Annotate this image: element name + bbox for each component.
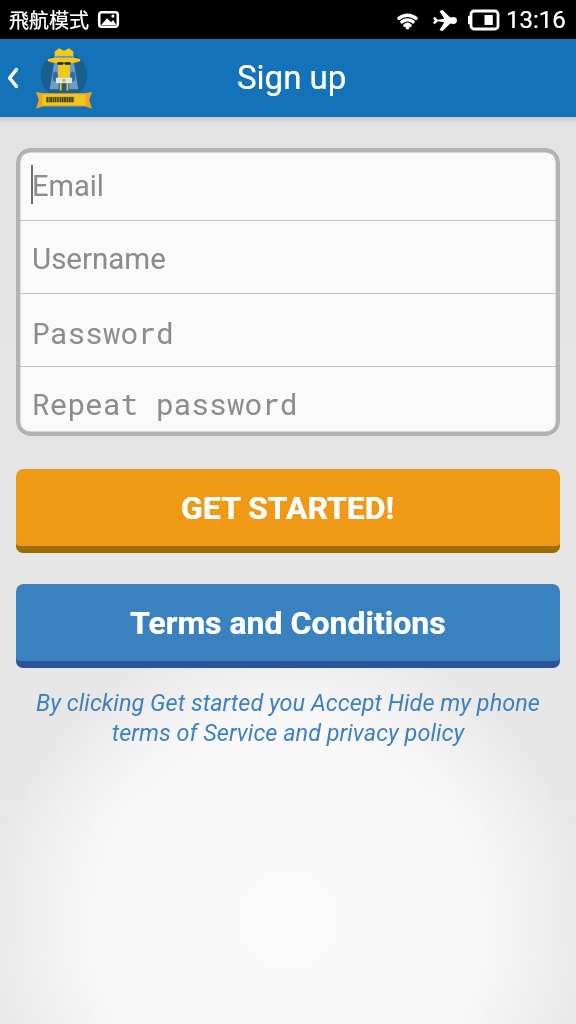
staticText: 飛航模式 xyxy=(9,5,89,34)
staticText: By clicking Get started you Accept Hide … xyxy=(0,689,576,746)
staticText: GET STARTED! xyxy=(181,489,395,527)
button[interactable]: Back xyxy=(0,49,26,107)
button[interactable]: Terms and Conditions xyxy=(16,584,560,668)
button[interactable]: Email xyxy=(18,148,558,220)
button[interactable]: GET STARTED! xyxy=(16,469,560,553)
staticText: Repeat password xyxy=(32,384,298,423)
button[interactable]: Username xyxy=(18,221,558,293)
staticText: Email xyxy=(32,169,104,203)
staticText: Terms and Conditions xyxy=(130,604,446,642)
staticText: Username xyxy=(32,242,166,277)
staticText: Sign up xyxy=(237,58,347,97)
staticText: Password xyxy=(32,313,174,352)
staticText: 13:16 xyxy=(506,6,566,34)
button[interactable]: Repeat password xyxy=(18,367,558,436)
button[interactable]: Password xyxy=(18,294,558,366)
